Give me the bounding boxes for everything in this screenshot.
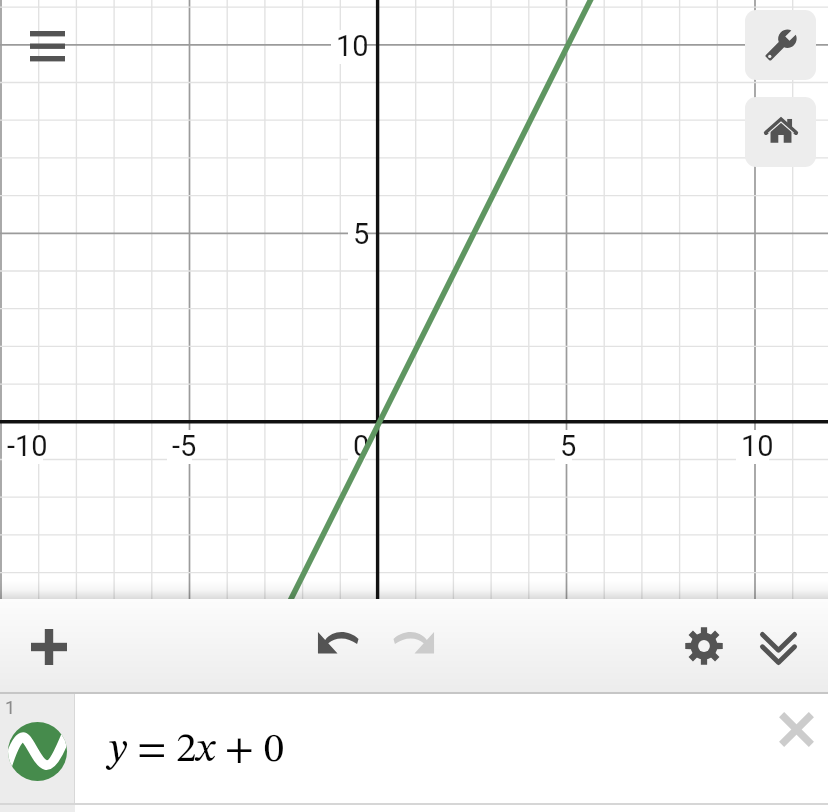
- button[interactable]: Home: [745, 97, 816, 167]
- staticText: -10: [7, 429, 48, 463]
- staticText: y = 2x + 0: [109, 730, 285, 771]
- staticText: 5: [560, 429, 577, 463]
- staticText: -5: [172, 429, 197, 463]
- button[interactable]: Collapse keypad: [743, 613, 814, 683]
- staticText: 1: [5, 697, 16, 718]
- staticText: 5: [353, 217, 370, 251]
- button[interactable]: Graph settings: [669, 611, 739, 681]
- button[interactable]: Undo: [303, 607, 373, 677]
- staticText: 10: [741, 429, 774, 463]
- button[interactable]: 1: [0, 694, 75, 803]
- staticText: 10: [336, 29, 369, 63]
- staticText: 0: [353, 429, 370, 463]
- button[interactable]: Menu: [12, 11, 82, 81]
- button[interactable]: Delete expression: [761, 694, 828, 764]
- button[interactable]: Settings: [745, 10, 816, 80]
- button[interactable]: Add expression: [13, 611, 84, 682]
- button[interactable]: Redo: [379, 607, 449, 677]
